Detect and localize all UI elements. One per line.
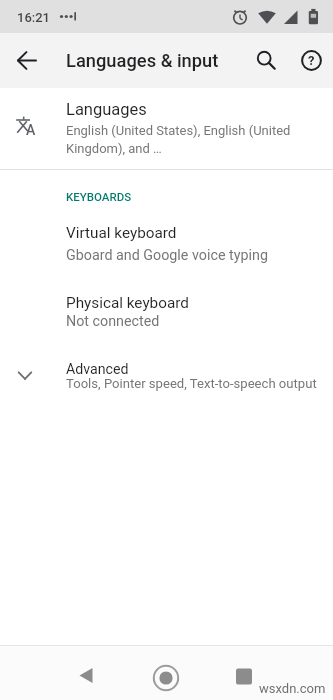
- staticText: Kingdom), and …: [66, 141, 162, 156]
- staticText: ?: [308, 53, 315, 68]
- staticText: Virtual keyboard: [66, 224, 177, 242]
- staticText: KEYBOARDS: [66, 190, 132, 203]
- button[interactable]: A: [0, 88, 333, 169]
- staticText: Gboard and Google voice typing: [66, 247, 268, 264]
- staticText: Physical keyboard: [66, 294, 189, 312]
- button[interactable]: Physical keyboard: [0, 282, 333, 350]
- button[interactable]: Advanced: [0, 350, 333, 405]
- staticText: Advanced: [66, 361, 129, 378]
- button[interactable]: [142, 654, 190, 700]
- button[interactable]: ?: [287, 36, 333, 84]
- button[interactable]: [220, 654, 268, 700]
- staticText: A: [26, 122, 36, 138]
- staticText: Tools, Pointer speed, Text-to-speech out…: [66, 376, 317, 391]
- staticText: wsxdn.com: [259, 681, 326, 696]
- staticText: English (United States), English (United: [66, 123, 291, 138]
- staticText: 16:21: [17, 10, 51, 25]
- staticText: Not connected: [66, 313, 160, 330]
- staticText: Languages & input: [66, 50, 219, 71]
- button[interactable]: [62, 654, 110, 700]
- button[interactable]: [242, 36, 290, 84]
- staticText: Languages: [66, 100, 147, 119]
- button[interactable]: Virtual keyboard: [0, 212, 333, 282]
- button[interactable]: [3, 36, 51, 84]
